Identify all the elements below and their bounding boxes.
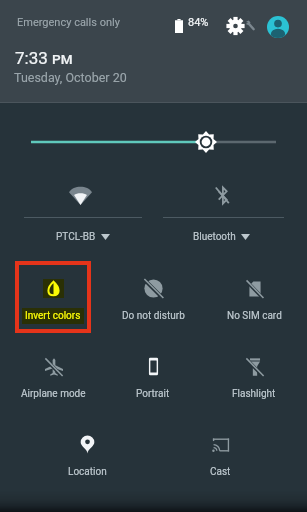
button[interactable]: Flashlight [204, 338, 304, 412]
staticText: Invert colors [25, 310, 81, 322]
button[interactable]: Cast [170, 416, 270, 490]
staticText: Airplane mode [21, 388, 86, 400]
staticText: 84% [188, 16, 209, 29]
button[interactable]: Portrait [103, 338, 203, 412]
button[interactable]: Location [37, 416, 137, 490]
button[interactable]: Do not disturb [103, 260, 203, 334]
staticText: Cast [210, 466, 231, 478]
staticText: Flashlight [232, 388, 276, 400]
staticText: Portrait [136, 388, 170, 400]
staticText: Do not disturb [122, 310, 185, 322]
button[interactable]: Settings [223, 10, 257, 42]
staticText: 7:33 [15, 48, 48, 68]
staticText: Emergency calls only [17, 16, 120, 29]
button[interactable]: PTCL-BB [24, 226, 142, 248]
button[interactable]: Bluetooth [161, 226, 282, 248]
staticText: Location [68, 466, 107, 478]
staticText: Bluetooth [193, 231, 236, 243]
button[interactable]: User profile [267, 16, 289, 38]
staticText: PM [52, 51, 73, 67]
button[interactable]: No SIM card [204, 260, 304, 334]
staticText: Tuesday, October 20 [14, 70, 127, 85]
button[interactable]: Invert colors [3, 260, 103, 334]
staticText: PTCL-BB [56, 231, 96, 243]
staticText: No SIM card [227, 310, 282, 322]
button[interactable]: Airplane mode [3, 338, 103, 412]
